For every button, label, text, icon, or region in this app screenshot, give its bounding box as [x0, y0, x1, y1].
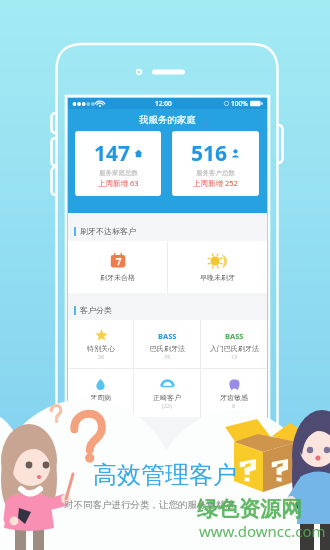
staticText: 牙齿敏感 — [220, 393, 248, 402]
button[interactable]: 早晚未刷牙 — [168, 241, 267, 293]
staticText: 高效管理客户 — [93, 460, 237, 490]
staticText: (22) — [162, 402, 172, 409]
staticText: 刷牙未合格 — [100, 273, 135, 282]
button[interactable]: 牙周病 — [68, 369, 133, 417]
staticText: 特别关心 — [87, 344, 115, 353]
staticText: 服务客户总数 — [196, 169, 235, 177]
staticText: 巴氏刷牙法 — [150, 344, 185, 353]
button[interactable]: BASS — [201, 320, 267, 368]
staticText: 刷牙不达标客户 — [80, 226, 136, 236]
staticText: 12:00 — [155, 99, 172, 108]
staticText: 上周新增 63 — [98, 178, 139, 188]
staticText: 36 — [98, 353, 105, 360]
staticText: 早晚未刷牙 — [200, 273, 235, 282]
button[interactable]: 516 — [172, 131, 259, 196]
button[interactable]: 正畸客户 — [134, 369, 200, 417]
staticText: 客户分类 — [80, 305, 112, 315]
staticText: 正畸客户 — [153, 393, 181, 402]
staticText: 147 — [94, 139, 131, 168]
button[interactable]: 特别关心 — [68, 320, 133, 368]
staticText: 绿色资源网 — [197, 496, 302, 522]
staticText: 516 — [191, 139, 228, 168]
staticText: 入门巴氏刷牙法 — [210, 344, 259, 353]
staticText: 上周新增 252 — [193, 178, 238, 188]
button[interactable]: 刷牙未合格 — [68, 241, 167, 293]
staticText: 对不同客户进行分类，让您的服务更精准 — [64, 499, 235, 511]
staticText: 服务家庭总数 — [99, 169, 138, 177]
staticText: 牙周病 — [90, 393, 111, 402]
staticText: 100% — [231, 99, 248, 108]
button[interactable]: 牙齿敏感 — [201, 369, 267, 417]
staticText: www.downcc.com — [199, 521, 326, 541]
staticText: 我服务的家庭 — [139, 114, 196, 126]
staticText: 76 — [164, 353, 171, 360]
button[interactable]: 147 — [75, 131, 161, 196]
staticText: BASS — [225, 331, 244, 341]
button[interactable]: BASS — [134, 320, 200, 368]
staticText: BASS — [158, 331, 177, 341]
staticText: 15 — [231, 353, 238, 360]
staticText: 8 — [232, 402, 236, 409]
